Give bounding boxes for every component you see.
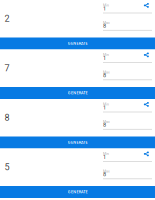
staticText: 8 bbox=[5, 112, 10, 123]
staticText: 1 bbox=[103, 104, 106, 111]
staticText: Min bbox=[103, 152, 109, 156]
button[interactable]: Share bbox=[144, 49, 155, 57]
staticText: 8 bbox=[103, 22, 106, 29]
staticText: Max bbox=[103, 120, 110, 124]
button[interactable]: Share bbox=[144, 148, 155, 156]
staticText: 1 bbox=[103, 154, 106, 160]
staticText: Min bbox=[103, 53, 109, 57]
staticText: Min bbox=[103, 3, 109, 7]
button[interactable]: GENERATE bbox=[0, 37, 155, 49]
staticText: 1 bbox=[103, 55, 106, 61]
staticText: Max bbox=[103, 70, 110, 74]
staticText: GENERATE bbox=[68, 91, 87, 95]
staticText: Max bbox=[103, 169, 110, 173]
staticText: GENERATE bbox=[68, 190, 87, 194]
staticText: GENERATE bbox=[68, 41, 87, 46]
staticText: Max bbox=[103, 21, 110, 25]
button[interactable]: GENERATE bbox=[0, 186, 155, 198]
button[interactable]: GENERATE bbox=[0, 136, 155, 148]
staticText: 1 bbox=[103, 5, 106, 12]
staticText: 2 bbox=[5, 13, 10, 24]
button[interactable]: Share bbox=[144, 0, 155, 8]
staticText: 7 bbox=[5, 63, 10, 73]
staticText: 8 bbox=[103, 171, 106, 178]
staticText: Min bbox=[103, 102, 109, 106]
staticText: 8 bbox=[103, 121, 106, 128]
button[interactable]: Share bbox=[144, 99, 155, 107]
staticText: 8 bbox=[103, 72, 106, 79]
staticText: GENERATE bbox=[68, 140, 87, 145]
staticText: 5 bbox=[5, 162, 10, 172]
button[interactable]: GENERATE bbox=[0, 87, 155, 99]
